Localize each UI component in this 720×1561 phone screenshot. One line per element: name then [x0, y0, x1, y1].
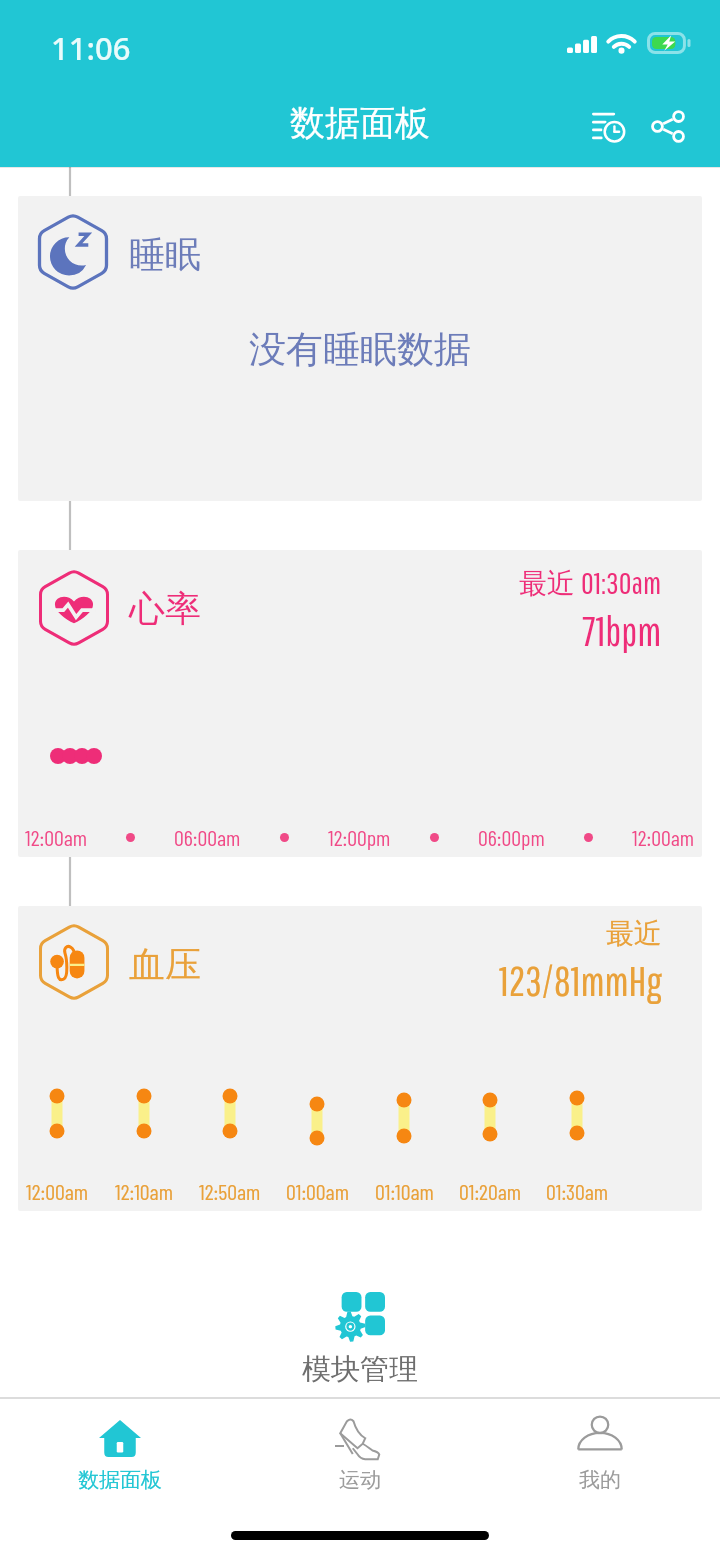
staticText: 没有睡眠数据 [249, 326, 471, 373]
staticText: 12:50am [199, 1178, 261, 1204]
staticText: 心率 [129, 586, 201, 631]
staticText: 我的 [579, 1467, 621, 1493]
staticText: 06:00pm [478, 824, 545, 850]
staticText: 最近 [606, 916, 662, 951]
staticText: 模块管理 [302, 1351, 418, 1388]
button[interactable]: 睡眠 [18, 196, 702, 501]
staticText: 12:00am [25, 824, 88, 850]
button[interactable]: History [578, 96, 638, 156]
button[interactable]: 心率 [18, 550, 702, 857]
button[interactable]: 运动 [240, 1399, 480, 1509]
staticText: 12:00am [26, 1178, 89, 1204]
button[interactable]: 数据面板 [0, 1399, 240, 1509]
staticText: 01:20am [459, 1178, 521, 1204]
staticText: 12:00pm [328, 824, 391, 850]
button[interactable]: 血压 [18, 906, 702, 1211]
staticText: 12:00am [632, 824, 695, 850]
staticText: 71bpm [582, 607, 662, 654]
staticText: 01:10am [375, 1178, 434, 1204]
staticText: 06:00am [174, 824, 241, 850]
staticText: 血压 [129, 942, 201, 987]
button[interactable]: Share [638, 96, 698, 156]
staticText: 11:06 [51, 27, 131, 69]
button[interactable]: 我的 [480, 1399, 720, 1509]
staticText: 01:30am [546, 1178, 609, 1204]
staticText: 睡眠 [129, 232, 201, 277]
staticText: 最近 [519, 566, 575, 601]
staticText: 12:10am [115, 1178, 173, 1204]
staticText: 数据面板 [290, 101, 430, 145]
button[interactable]: 模块管理 [0, 1292, 720, 1388]
staticText: 01:00am [286, 1178, 349, 1204]
staticText: 01:30am [581, 564, 662, 600]
staticText: 数据面板 [78, 1467, 162, 1493]
staticText: 123/81mmHg [499, 957, 662, 1004]
staticText: 运动 [339, 1467, 381, 1493]
